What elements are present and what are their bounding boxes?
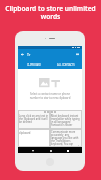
staticText: ALL CONTACTS <box>57 63 75 66</box>
button[interactable]: clipboard <box>18 129 50 147</box>
button[interactable]: Keyboard <box>75 52 80 57</box>
staticText: Tr <box>27 52 31 57</box>
button[interactable]: Recents <box>65 148 70 153</box>
button[interactable]: Most keyboard instant translation while … <box>50 110 82 129</box>
button[interactable]: Long click on any text in the clipboard … <box>18 110 50 129</box>
staticText: CLIPBOARD <box>27 63 41 66</box>
button[interactable]: CLIPBOARD <box>18 59 50 69</box>
staticText: Select a contact name or phone number to… <box>26 92 74 100</box>
staticText: Communicate more accurately, any languag… <box>51 130 81 146</box>
button[interactable]: Communicate more accurately, any languag… <box>50 129 82 147</box>
button[interactable]: Navigate up <box>20 52 25 57</box>
staticText: clipboard <box>19 131 31 135</box>
staticText: Most keyboard instant translation while … <box>51 114 81 126</box>
button[interactable]: Home <box>48 148 53 153</box>
button[interactable]: Back <box>30 148 35 153</box>
staticText: Long click on any text in the clipboard … <box>19 114 49 123</box>
button[interactable]: ALL CONTACTS <box>50 59 82 69</box>
staticText: Clipboard to store unlimited words <box>3 4 98 21</box>
